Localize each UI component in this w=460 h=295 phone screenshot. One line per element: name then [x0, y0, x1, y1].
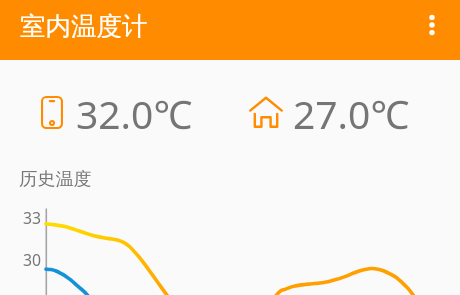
staticText: 33: [23, 207, 42, 229]
staticText: 历史温度: [19, 167, 92, 190]
staticText: 室内温度计: [20, 10, 148, 42]
staticText: 30: [23, 249, 42, 271]
staticText: 32.0℃: [76, 87, 193, 140]
button[interactable]: More options: [408, 1, 456, 49]
staticText: 27.0℃: [293, 87, 410, 140]
